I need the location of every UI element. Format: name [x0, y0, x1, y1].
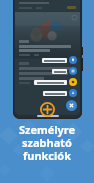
button[interactable]: Quick action 2	[34, 78, 77, 86]
other: Add custom function	[40, 102, 55, 117]
button[interactable]: Quick action 0	[42, 56, 77, 64]
other: Share	[72, 15, 77, 20]
button[interactable]: Quick action 1	[52, 67, 77, 75]
staticText: Személyre szabható funkciók	[0, 122, 94, 163]
button[interactable]: Quick action 3	[43, 89, 77, 97]
button[interactable]: Close menu	[66, 100, 77, 111]
